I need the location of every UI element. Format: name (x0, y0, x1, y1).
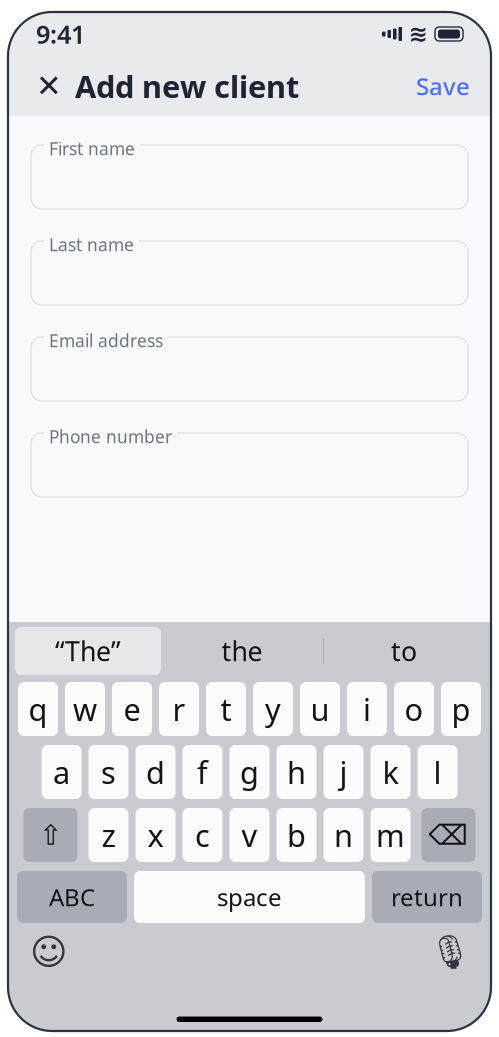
button[interactable]: n (323, 808, 363, 862)
button[interactable]: p (441, 682, 481, 736)
button[interactable]: c (182, 808, 222, 862)
button[interactable]: o (394, 682, 434, 736)
staticText: e (123, 689, 140, 729)
button[interactable]: a (41, 745, 81, 799)
staticText: Add new client (75, 66, 299, 106)
staticText: return (391, 881, 463, 913)
staticText: x (147, 815, 163, 855)
staticText: “The” (55, 633, 121, 669)
button[interactable]: f (182, 745, 222, 799)
staticText: g (240, 752, 259, 792)
button[interactable]: the (161, 627, 323, 675)
button[interactable]: Email address (31, 329, 468, 401)
staticText: p (451, 689, 470, 729)
button[interactable]: Phone number (31, 425, 468, 497)
staticText: Email address (49, 329, 163, 352)
staticText: space (217, 881, 282, 913)
staticText: f (197, 752, 208, 792)
button[interactable]: First name (31, 137, 468, 209)
button[interactable]: Close (29, 64, 69, 108)
button[interactable]: u (300, 682, 340, 736)
button[interactable]: h (276, 745, 316, 799)
button[interactable]: e (112, 682, 152, 736)
button[interactable]: return (372, 871, 482, 923)
staticText: q (28, 689, 47, 729)
staticText: o (404, 689, 423, 729)
button[interactable]: Save (416, 64, 470, 108)
staticText: First name (49, 137, 135, 160)
button[interactable]: t (206, 682, 246, 736)
staticText: k (382, 752, 398, 792)
staticText: j (339, 752, 347, 792)
button[interactable]: “The” (15, 627, 161, 675)
button[interactable]: s (88, 745, 128, 799)
staticText: Phone number (49, 425, 172, 448)
staticText: l (433, 752, 441, 792)
staticText: ☺ (30, 932, 68, 972)
staticText: c (195, 815, 210, 855)
button[interactable]: b (276, 808, 316, 862)
button[interactable]: Dictation (427, 929, 473, 975)
button[interactable]: Delete (421, 808, 475, 862)
staticText: the (221, 633, 262, 669)
staticText: ⌫ (428, 819, 468, 851)
button[interactable]: w (65, 682, 105, 736)
button[interactable]: v (229, 808, 269, 862)
button[interactable]: Last name (31, 233, 468, 305)
staticText: ABC (49, 881, 95, 913)
button[interactable]: ABC (17, 871, 127, 923)
button[interactable]: space (134, 871, 365, 923)
staticText: 9:41 (36, 17, 85, 51)
button[interactable]: Shift (23, 808, 77, 862)
button[interactable]: m (370, 808, 410, 862)
staticText: h (287, 752, 306, 792)
staticText: d (146, 752, 165, 792)
staticText: z (101, 815, 115, 855)
staticText: ≋ (409, 21, 428, 47)
staticText: n (334, 815, 353, 855)
staticText: t (220, 689, 231, 729)
staticText: i (363, 689, 371, 729)
button[interactable]: Emoji (26, 929, 72, 975)
staticText: w (73, 689, 97, 729)
staticText: ⇧ (39, 819, 62, 851)
staticText: s (101, 752, 116, 792)
button[interactable]: k (370, 745, 410, 799)
staticText: Save (416, 70, 470, 102)
staticText: ✕ (36, 69, 62, 103)
button[interactable]: x (135, 808, 175, 862)
button[interactable]: r (159, 682, 199, 736)
staticText: b (287, 815, 306, 855)
staticText: y (265, 689, 281, 729)
button[interactable]: d (135, 745, 175, 799)
staticText: 🎙 (429, 933, 471, 971)
button[interactable]: i (347, 682, 387, 736)
button[interactable]: j (323, 745, 363, 799)
staticText: Last name (49, 233, 134, 256)
staticText: u (310, 689, 329, 729)
button[interactable]: to (324, 627, 484, 675)
button[interactable]: z (88, 808, 128, 862)
staticText: v (241, 815, 257, 855)
button[interactable]: q (18, 682, 58, 736)
staticText: m (376, 815, 405, 855)
button[interactable]: l (417, 745, 457, 799)
button[interactable]: y (253, 682, 293, 736)
staticText: a (53, 752, 70, 792)
staticText: to (391, 633, 417, 669)
staticText: r (172, 689, 185, 729)
button[interactable]: g (229, 745, 269, 799)
